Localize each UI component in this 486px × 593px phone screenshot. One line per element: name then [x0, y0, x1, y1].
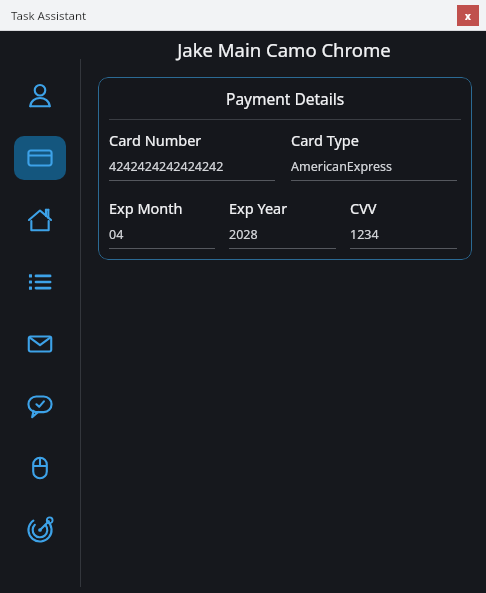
- staticText: 04: [109, 226, 124, 243]
- staticText: x: [465, 9, 471, 23]
- button[interactable]: Profile: [14, 74, 66, 118]
- button[interactable]: Mouse: [14, 446, 66, 490]
- button[interactable]: Payment: [14, 136, 66, 180]
- button[interactable]: List: [14, 260, 66, 304]
- staticText: CVV: [350, 198, 377, 218]
- staticText: Task Assistant: [11, 8, 87, 24]
- staticText: Exp Month: [109, 198, 183, 218]
- button[interactable]: Home: [14, 198, 66, 242]
- button[interactable]: Payment Details: [109, 77, 461, 260]
- button[interactable]: Mail: [14, 322, 66, 366]
- staticText: Jake Main Camo Chrome: [177, 37, 391, 62]
- staticText: 4242424242424242: [109, 158, 224, 175]
- staticText: Card Type: [291, 130, 359, 150]
- staticText: 2028: [229, 226, 258, 243]
- button[interactable]: Close: [457, 5, 479, 26]
- staticText: Exp Year: [229, 198, 288, 218]
- staticText: Card Number: [109, 130, 202, 150]
- button[interactable]: Target: [14, 508, 66, 552]
- staticText: Payment Details: [226, 88, 345, 109]
- button[interactable]: Messages: [14, 384, 66, 428]
- staticText: AmericanExpress: [291, 158, 393, 175]
- staticText: 1234: [350, 226, 379, 243]
